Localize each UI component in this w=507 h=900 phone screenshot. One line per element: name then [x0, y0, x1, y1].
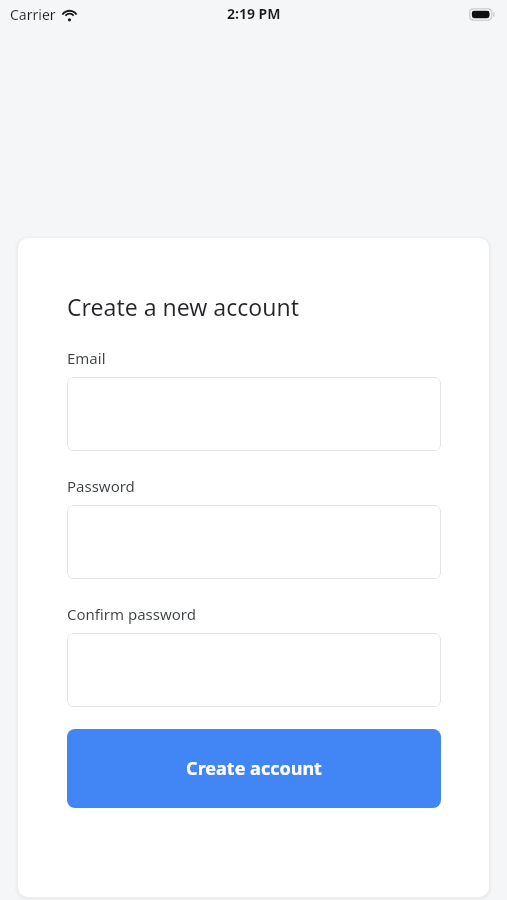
button[interactable] — [67, 633, 441, 707]
button[interactable] — [67, 505, 441, 579]
staticText: Password — [67, 476, 135, 496]
staticText: 2:19 PM — [227, 4, 281, 23]
staticText: Carrier — [10, 5, 56, 24]
staticText: Email — [67, 348, 106, 368]
button[interactable]: Create account — [67, 729, 441, 808]
staticText: Create account — [186, 756, 322, 781]
staticText: Confirm password — [67, 604, 196, 624]
staticText: Create a new account — [67, 291, 300, 322]
button[interactable] — [67, 377, 441, 451]
